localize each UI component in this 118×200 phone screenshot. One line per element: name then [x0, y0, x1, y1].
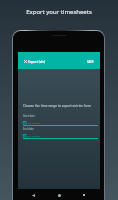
button[interactable]: Back — [28, 190, 38, 200]
staticText: Choose the time range to export entries … — [23, 104, 91, 108]
staticText: Export (xls) — [28, 60, 45, 64]
staticText: End date — [23, 127, 34, 131]
staticText: Start date — [23, 114, 35, 118]
button[interactable]: Close — [19, 56, 28, 65]
staticText: Export your timesheets — [0, 8, 118, 16]
staticText: Apr 30 2019 — [27, 134, 41, 137]
button[interactable]: End date — [23, 127, 98, 139]
button[interactable]: SAVE — [83, 55, 100, 67]
staticText: SAVE — [87, 60, 94, 64]
button[interactable]: Recents — [79, 190, 89, 200]
button[interactable]: Home — [54, 190, 64, 200]
button[interactable]: Start date — [23, 114, 98, 126]
staticText: Apr 15 2019 — [27, 121, 41, 124]
